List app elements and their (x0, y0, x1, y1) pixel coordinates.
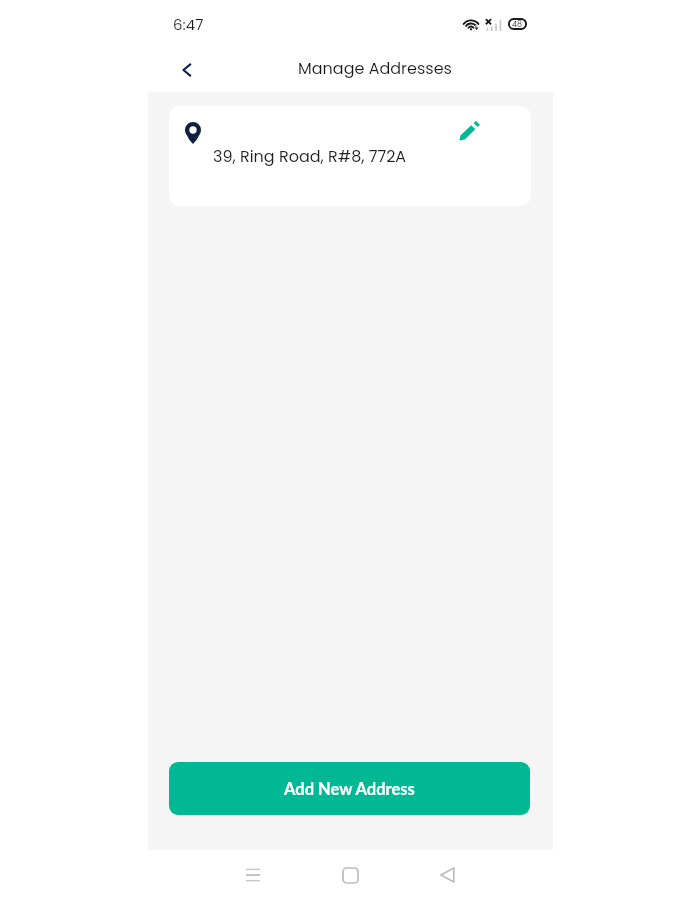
button[interactable]: Home (333, 858, 367, 892)
button[interactable]: Add New Address (169, 762, 530, 815)
button[interactable]: Recent apps (236, 858, 270, 892)
staticText: 39, Ring Road, R#8, 772A (213, 145, 407, 167)
button[interactable]: 39, Ring Road, R#8, 772A (169, 106, 531, 206)
button[interactable]: Back (430, 858, 464, 892)
staticText: Add New Address (284, 779, 415, 799)
button[interactable]: Back (168, 52, 204, 88)
staticText: Manage Addresses (298, 57, 452, 79)
staticText: 48 (512, 19, 523, 30)
staticText: 6:47 (173, 14, 204, 35)
button[interactable]: Edit address (455, 117, 483, 145)
